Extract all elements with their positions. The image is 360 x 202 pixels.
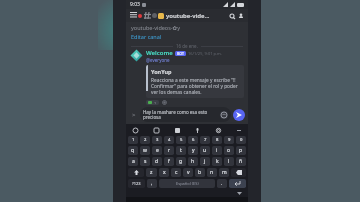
button[interactable]: Clipboard [173, 126, 181, 134]
button[interactable]: p [236, 146, 246, 155]
button[interactable]: Emoji [131, 126, 139, 134]
staticText: youtube-videos-✿y [131, 24, 181, 31]
button[interactable]: 6 [188, 136, 198, 144]
staticText: k [216, 158, 219, 165]
staticText: @everyone [146, 57, 170, 63]
button[interactable]: Symbols [128, 179, 145, 188]
button[interactable]: Members [236, 11, 245, 20]
button[interactable]: d [152, 157, 162, 166]
staticText: d [155, 158, 159, 165]
button[interactable]: Emoji [220, 111, 228, 119]
button[interactable]: ñ [236, 157, 246, 166]
button[interactable]: e [152, 146, 162, 155]
button[interactable]: h [188, 157, 198, 166]
button[interactable]: f [164, 157, 174, 166]
button[interactable]: 7 [200, 136, 210, 144]
button[interactable]: 0 [236, 136, 246, 144]
button[interactable]: k [212, 157, 222, 166]
button[interactable]: o [224, 146, 234, 155]
staticText: x [163, 169, 166, 176]
button[interactable]: c [171, 168, 181, 177]
button[interactable]: g [176, 157, 186, 166]
staticText: l [228, 158, 230, 165]
button[interactable]: Backspace [231, 168, 246, 177]
staticText: . [221, 180, 223, 187]
button[interactable]: l [224, 157, 234, 166]
button[interactable]: 4 [164, 136, 174, 144]
staticText: o [227, 147, 231, 154]
button[interactable]: Add reaction [161, 100, 168, 105]
button[interactable]: Editar canal [131, 33, 162, 40]
staticText: Welcome [146, 49, 173, 57]
button[interactable]: v [183, 168, 193, 177]
button[interactable]: x [159, 168, 169, 177]
staticText: BOT [177, 51, 184, 56]
staticText: ?123 [132, 181, 141, 186]
button[interactable]: 3 [152, 136, 162, 144]
button[interactable]: 8 [212, 136, 222, 144]
staticText: b [198, 169, 202, 176]
staticText: u [203, 147, 207, 154]
button[interactable]: m [219, 168, 229, 177]
staticText: w [143, 147, 147, 154]
staticText: h [191, 158, 195, 165]
staticText: > [132, 111, 136, 119]
button[interactable]: n [207, 168, 217, 177]
button[interactable]: a [128, 157, 138, 166]
staticText: Reacciona a este mensaje y escribe "!!Co… [151, 77, 241, 95]
staticText: a [132, 158, 135, 165]
button[interactable]: Español (ES) [159, 179, 215, 188]
button[interactable]: Hay la mashare como esa esto preciosa [140, 107, 231, 122]
button[interactable]: Send message [233, 109, 245, 121]
staticText: j [204, 158, 206, 165]
button[interactable]: Hide keyboard [236, 190, 242, 196]
staticText: r [168, 147, 171, 154]
button[interactable]: t [176, 146, 186, 155]
button[interactable]: More options [235, 126, 243, 134]
staticText: 6 [192, 137, 195, 143]
button[interactable]: j [200, 157, 210, 166]
button[interactable]: y [188, 146, 198, 155]
staticText: 3 [156, 137, 159, 143]
button[interactable]: Voice input [193, 126, 201, 134]
button[interactable]: Search [227, 11, 236, 20]
button[interactable]: Open navigation [129, 11, 138, 20]
button[interactable]: b [195, 168, 205, 177]
button[interactable]: s [140, 157, 150, 166]
button[interactable]: q [128, 146, 138, 155]
button[interactable]: r [164, 146, 174, 155]
staticText: 8 [216, 137, 219, 143]
button[interactable]: . [217, 179, 227, 188]
staticText: c [175, 169, 178, 176]
button[interactable]: 2 [140, 136, 150, 144]
button[interactable]: 9 [224, 136, 234, 144]
button[interactable]: i [212, 146, 222, 155]
button[interactable]: 1 [146, 100, 159, 105]
staticText: 1 [132, 137, 135, 143]
staticText: Hay la mashare como esa esto preciosa [143, 109, 220, 121]
button[interactable]: z [146, 168, 157, 177]
staticText: 1 [154, 101, 157, 104]
staticText: n [210, 169, 214, 176]
staticText: g [179, 158, 183, 165]
staticText: y [192, 147, 195, 154]
staticText: 16/1/25, 9:01 p.m. [188, 51, 222, 56]
button[interactable]: Attach [129, 110, 138, 119]
button[interactable]: GIF [152, 126, 160, 134]
staticText: ñ [239, 158, 243, 165]
staticText: 7 [204, 137, 207, 143]
staticText: 0 [240, 137, 243, 143]
staticText: 9:03 [130, 1, 140, 8]
staticText: , [151, 180, 153, 187]
staticText: m [222, 169, 227, 176]
button[interactable]: Enter [229, 179, 246, 188]
staticText: YonYup [151, 68, 172, 75]
button[interactable]: 1 [128, 136, 138, 144]
button[interactable]: 5 [176, 136, 186, 144]
button[interactable]: , [147, 179, 157, 188]
staticText: 5 [180, 137, 183, 143]
button[interactable]: w [140, 146, 150, 155]
button[interactable]: Settings [214, 126, 222, 134]
button[interactable]: u [200, 146, 210, 155]
button[interactable]: Shift [128, 168, 144, 177]
